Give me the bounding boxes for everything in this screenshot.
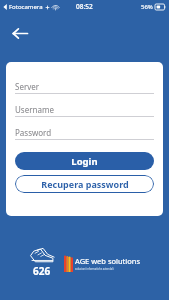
staticText: 08:52 [76,2,93,11]
staticText: Fotocamera [9,3,43,11]
staticText: Recupera password [41,178,129,190]
staticText: AGE web solutions [75,256,141,266]
staticText: Password [15,127,52,138]
button[interactable]: Username [15,101,154,117]
button[interactable]: Back [7,20,33,46]
staticText: Username [15,104,54,115]
staticText: soluzioni informatiche aziendali [75,267,114,271]
button[interactable]: Recupera password [15,175,154,193]
staticText: Server [15,81,40,92]
staticText: 626 [33,264,51,278]
button[interactable]: Login [15,152,154,170]
button[interactable]: Server [15,78,154,94]
staticText: Login [71,155,98,168]
staticText: 56% [141,3,153,11]
button[interactable]: Password [15,124,154,140]
